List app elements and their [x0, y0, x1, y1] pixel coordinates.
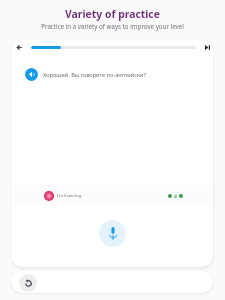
button[interactable]: Restart: [19, 274, 37, 292]
staticText: Practice in a variety of ways to improve…: [0, 22, 225, 30]
staticText: I'm listening: [57, 193, 82, 199]
button[interactable]: Back: [12, 40, 26, 54]
button[interactable]: Skip: [201, 41, 213, 54]
button[interactable]: Play audio: [25, 68, 38, 81]
staticText: Variety of practice: [0, 7, 225, 21]
staticText: Хороший. Вы говорите по-английски?: [43, 71, 146, 79]
button[interactable]: Microphone: [99, 220, 126, 247]
